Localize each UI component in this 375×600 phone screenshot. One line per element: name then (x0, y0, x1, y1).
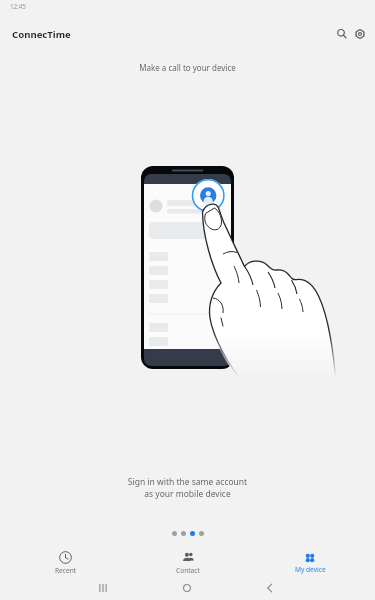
button[interactable]: Contact (127, 549, 249, 577)
button[interactable]: Recents (93, 578, 113, 598)
staticText: 12:45 (10, 2, 26, 10)
staticText: My device (295, 565, 326, 574)
button[interactable]: Settings (346, 20, 374, 48)
button[interactable]: My device (249, 549, 371, 577)
button[interactable]: Search (328, 20, 356, 48)
staticText: Sign in with the same account as your mo… (0, 476, 375, 500)
button[interactable]: Back (259, 578, 279, 598)
staticText: ConnecTime (12, 28, 71, 41)
button[interactable]: Recent (4, 549, 127, 577)
staticText: Contact (176, 566, 200, 575)
staticText: Make a call to your device (0, 62, 375, 73)
staticText: Recent (55, 566, 77, 575)
button[interactable]: Home (177, 578, 197, 598)
